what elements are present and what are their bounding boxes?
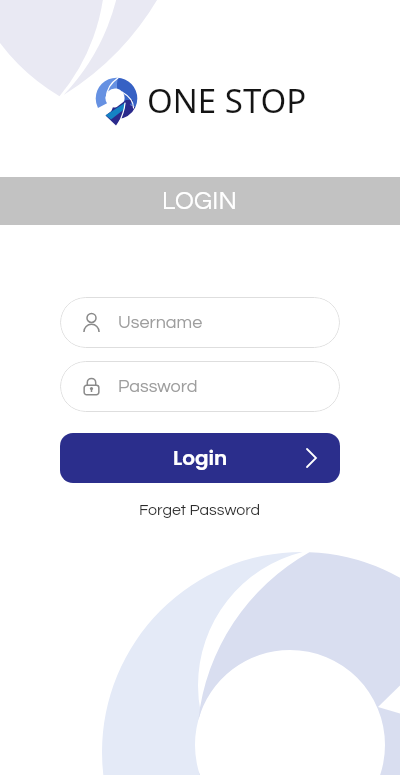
- staticText: Password: [118, 377, 198, 396]
- staticText: Username: [118, 313, 203, 332]
- button[interactable]: Username: [60, 297, 340, 348]
- staticText: Login: [173, 444, 228, 472]
- staticText: LOGIN: [162, 188, 238, 214]
- button[interactable]: Password: [60, 361, 340, 412]
- staticText: ONE STOP: [147, 78, 307, 123]
- button[interactable]: Login: [60, 433, 340, 483]
- button[interactable]: Forget Password: [139, 502, 261, 518]
